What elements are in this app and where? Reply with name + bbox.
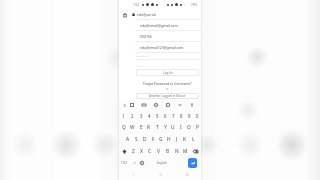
button[interactable]: Keyboard tool (138, 100, 150, 110)
staticText: ?123 (121, 161, 128, 165)
button[interactable]: T (153, 121, 161, 133)
staticText: Another Logged in Device (149, 94, 186, 98)
staticText: O (187, 124, 191, 131)
staticText: Password (136, 54, 147, 57)
staticText: ... (184, 3, 187, 7)
button[interactable]: S (132, 133, 141, 145)
staticText: 76% (191, 3, 197, 7)
button[interactable]: U (169, 121, 177, 133)
button[interactable]: H (165, 133, 173, 145)
button[interactable]: X (137, 145, 145, 157)
button[interactable]: Keyboard tool (174, 100, 186, 110)
staticText: A (126, 136, 130, 143)
staticText: 6 (164, 113, 167, 119)
staticText: N (175, 148, 179, 155)
staticText: M (183, 148, 188, 155)
staticText: P (196, 124, 199, 131)
staticText: 9 (188, 113, 191, 119)
staticText: W (130, 124, 135, 131)
button[interactable]: O (185, 121, 193, 133)
button[interactable]: Home (122, 12, 127, 17)
button[interactable]: 7 (169, 110, 177, 121)
button[interactable]: ?123 (119, 157, 130, 168)
button[interactable]: Keyboard tool (162, 100, 174, 110)
button[interactable]: M (181, 145, 190, 157)
staticText: 5 (156, 113, 159, 119)
button[interactable]: Settings (138, 157, 146, 168)
staticText: B (166, 148, 170, 155)
button[interactable]: N (172, 145, 181, 157)
staticText: I (180, 124, 182, 131)
button[interactable]: Another Logged in Device (136, 93, 199, 99)
button[interactable]: Z (129, 145, 137, 157)
button[interactable]: 8 (177, 110, 185, 121)
button[interactable]: 6 (161, 110, 169, 121)
button[interactable]: R (145, 121, 153, 133)
button[interactable]: Recents (174, 168, 201, 180)
staticText: 3 (140, 113, 143, 119)
staticText: 1 (122, 113, 125, 119)
staticText: K (183, 136, 187, 143)
button[interactable]: Emoji (130, 157, 138, 168)
button[interactable]: edu@email123@gmail.com (135, 42, 201, 53)
button[interactable]: English (147, 158, 177, 167)
button[interactable]: 5 (153, 110, 161, 121)
staticText: Forgot Password or Username? (143, 81, 192, 85)
button[interactable]: Shift (119, 145, 129, 157)
staticText: :-) (133, 161, 136, 165)
button[interactable]: Keyboard tool (126, 100, 138, 110)
staticText: 0 (196, 113, 199, 119)
button[interactable]: E (137, 121, 145, 133)
button[interactable]: W (128, 121, 137, 133)
button[interactable]: V (154, 145, 163, 157)
button[interactable]: L (189, 133, 197, 145)
staticText: 8 (180, 113, 183, 119)
button[interactable]: J (173, 133, 181, 145)
staticText: V (157, 148, 160, 155)
staticText: edu@email123@gmail.com (140, 45, 184, 50)
button[interactable]: Y (161, 121, 169, 133)
staticText: edu@email@gmail.com (140, 23, 178, 28)
staticText: 4 (148, 113, 151, 119)
staticText: XXX766 (140, 34, 152, 39)
staticText: edu@portal (137, 12, 156, 17)
button[interactable]: XXX766 (135, 31, 201, 42)
button[interactable]: Keyboard tool (186, 100, 198, 110)
button[interactable]: C (145, 145, 154, 157)
button[interactable]: Enter (188, 158, 197, 168)
staticText: Q (122, 124, 126, 131)
staticText: 2 (131, 113, 134, 119)
button[interactable]: P (193, 121, 201, 133)
staticText: E (140, 124, 143, 131)
button[interactable]: G (157, 133, 165, 145)
staticText: D (143, 136, 147, 143)
button[interactable]: D (141, 133, 149, 145)
button[interactable]: Backspace (190, 145, 201, 157)
staticText: R (147, 124, 151, 131)
staticText: or (166, 87, 169, 91)
button[interactable]: 2 (128, 110, 137, 121)
button[interactable]: F (149, 133, 157, 145)
button[interactable]: B (163, 145, 172, 157)
button[interactable]: A (123, 133, 132, 145)
button[interactable]: 3 (137, 110, 145, 121)
staticText: G (159, 136, 163, 143)
staticText: Log In (163, 71, 173, 75)
button[interactable]: Q (119, 121, 128, 133)
button[interactable]: Log In (136, 69, 199, 76)
button[interactable]: Forgot Password or Username? (136, 81, 199, 85)
button[interactable]: 4 (145, 110, 153, 121)
staticText: U (171, 124, 175, 131)
button[interactable]: Keyboard tool (150, 100, 162, 110)
button[interactable]: 9 (185, 110, 193, 121)
staticText: . (182, 160, 183, 165)
button[interactable]: edu@email@gmail.com (135, 20, 201, 31)
staticText: J (176, 136, 178, 143)
button[interactable]: 1 (119, 110, 128, 121)
button[interactable]: 0 (193, 110, 201, 121)
button[interactable]: I (177, 121, 185, 133)
button[interactable]: K (181, 133, 189, 145)
